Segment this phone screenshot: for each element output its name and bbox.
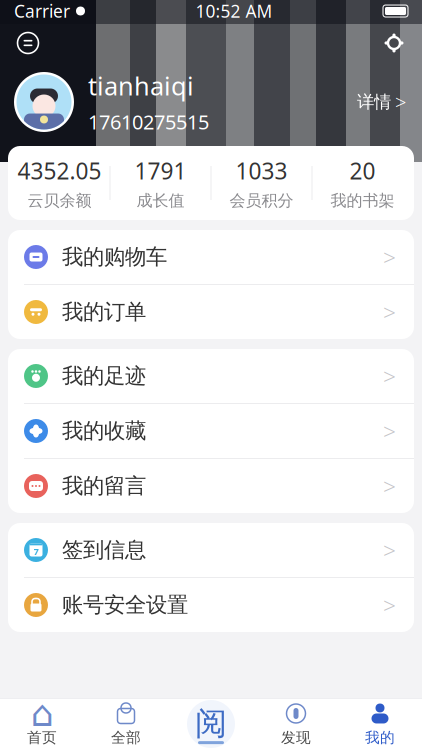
button[interactable]: 我的	[338, 698, 422, 750]
staticText: 我的订单	[62, 299, 146, 325]
staticText: >	[383, 416, 396, 446]
staticText: 账号安全设置	[62, 592, 188, 618]
button[interactable]: 1033	[211, 146, 311, 220]
staticText: >	[383, 361, 396, 391]
button[interactable]: 阅读	[168, 698, 254, 750]
staticText: 签到信息	[62, 537, 146, 563]
button[interactable]: 发现	[254, 698, 338, 750]
staticText: 1791	[134, 156, 186, 186]
staticText: 20	[349, 156, 375, 186]
button[interactable]: 1791	[110, 146, 210, 220]
button[interactable]: 我的收藏	[8, 404, 414, 458]
staticText: tianhaiqi	[88, 69, 194, 102]
staticText: 我的	[365, 728, 395, 746]
staticText: 阅	[195, 704, 227, 743]
staticText: >	[383, 590, 396, 620]
staticText: >	[383, 535, 396, 565]
button[interactable]: 我的留言	[8, 459, 414, 513]
button[interactable]: 7	[8, 523, 414, 577]
button[interactable]: 我的购物车	[8, 230, 414, 284]
staticText: 发现	[281, 728, 311, 746]
button[interactable]: 我的订单	[8, 285, 414, 339]
staticText: 会员积分	[229, 191, 293, 210]
staticText: 成长值	[136, 191, 184, 210]
staticText: 17610275515	[88, 108, 209, 135]
staticText: 我的购物车	[62, 244, 167, 270]
button[interactable]: 全部	[84, 698, 168, 750]
staticText: Carrier	[14, 0, 70, 22]
staticText: >	[383, 471, 396, 501]
staticText: >	[383, 242, 396, 272]
button[interactable]: 账号安全设置	[8, 578, 414, 632]
staticText: 我的收藏	[62, 418, 146, 444]
button[interactable]: Messages	[8, 23, 48, 63]
staticText: 云贝余额	[27, 191, 91, 210]
staticText: 1033	[235, 156, 287, 186]
button[interactable]: ⌂	[0, 698, 84, 750]
button[interactable]: Settings	[374, 23, 414, 63]
button[interactable]: 20	[312, 146, 412, 220]
staticText: >	[383, 297, 396, 327]
staticText: 7	[33, 545, 38, 558]
staticText: 我的书架	[330, 191, 394, 210]
button[interactable]: 4352.05	[9, 146, 109, 220]
staticText: 我的留言	[62, 473, 146, 499]
staticText: 我的足迹	[62, 363, 146, 389]
staticText: 10:52 AM	[195, 0, 272, 22]
staticText: >	[395, 89, 406, 115]
button[interactable]: 详情	[349, 81, 414, 123]
staticText: 全部	[111, 728, 141, 746]
staticText: 首页	[27, 728, 57, 746]
button[interactable]: 我的足迹	[8, 349, 414, 403]
staticText: ⌂	[30, 693, 53, 734]
staticText: 详情	[357, 91, 391, 113]
staticText: 4352.05	[17, 156, 101, 186]
